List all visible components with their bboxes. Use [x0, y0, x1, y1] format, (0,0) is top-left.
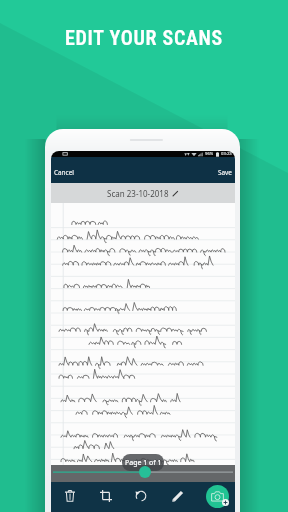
staticText: 03:23 — [221, 151, 232, 157]
button[interactable]: Cancel — [51, 162, 80, 183]
button[interactable]: Page slider — [139, 466, 151, 478]
staticText: 96% — [205, 151, 214, 157]
button[interactable]: Delete — [59, 485, 81, 507]
staticText: EDIT YOUR SCANS — [65, 26, 223, 49]
button[interactable]: Scan 23-10-2018 — [51, 183, 235, 203]
button[interactable]: Crop — [95, 485, 117, 507]
button[interactable]: Add scan — [206, 485, 229, 508]
button[interactable]: Edit — [167, 485, 189, 507]
staticText: Cancel — [54, 168, 74, 177]
staticText: Save — [218, 168, 232, 177]
staticText: Scan 23-10-2018 — [107, 188, 169, 199]
button[interactable]: Save — [212, 162, 235, 183]
staticText: Page 1 of 1 — [125, 458, 162, 468]
button[interactable]: Rotate — [130, 485, 152, 507]
